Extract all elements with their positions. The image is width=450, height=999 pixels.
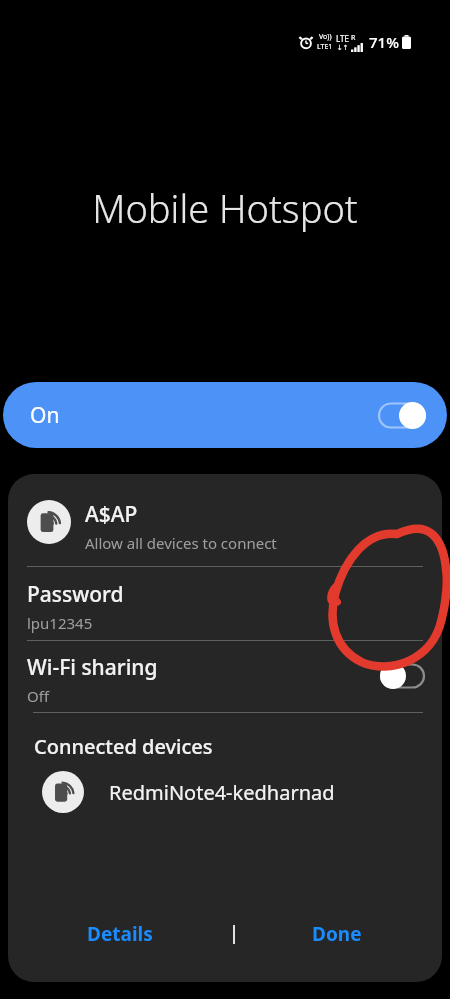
staticText: ↓↑ <box>337 44 349 52</box>
staticText: Wi-Fi sharing <box>27 653 158 682</box>
staticText: RedmiNote4-kedharnad <box>109 779 335 806</box>
button[interactable]: Done <box>269 906 405 962</box>
staticText: A$AP <box>85 500 138 529</box>
staticText: Allow all devices to connect <box>85 533 277 553</box>
staticText: Mobile Hotspot <box>0 182 450 234</box>
button[interactable]: Details <box>52 906 188 962</box>
staticText: Off <box>27 686 50 706</box>
staticText: Done <box>312 921 362 947</box>
button[interactable]: A$AP <box>8 492 442 566</box>
button[interactable]: On <box>3 382 447 448</box>
staticText: LTE <box>336 33 349 44</box>
staticText: lpu12345 <box>27 613 93 633</box>
staticText: R <box>351 33 356 43</box>
staticText: Password <box>27 580 124 609</box>
staticText: Vo)) <box>319 32 332 42</box>
staticText: On <box>30 401 60 430</box>
button[interactable]: Wi-Fi sharing <box>8 641 442 712</box>
staticText: Details <box>87 921 153 947</box>
button[interactable]: Password <box>8 567 442 640</box>
staticText: LTE1 <box>317 42 333 52</box>
button[interactable]: Wi-Fi sharing toggle, off <box>380 663 425 689</box>
button[interactable]: RedmiNote4-kedharnad <box>8 766 442 818</box>
staticText: Connected devices <box>34 733 213 760</box>
staticText: 71% <box>369 32 399 52</box>
